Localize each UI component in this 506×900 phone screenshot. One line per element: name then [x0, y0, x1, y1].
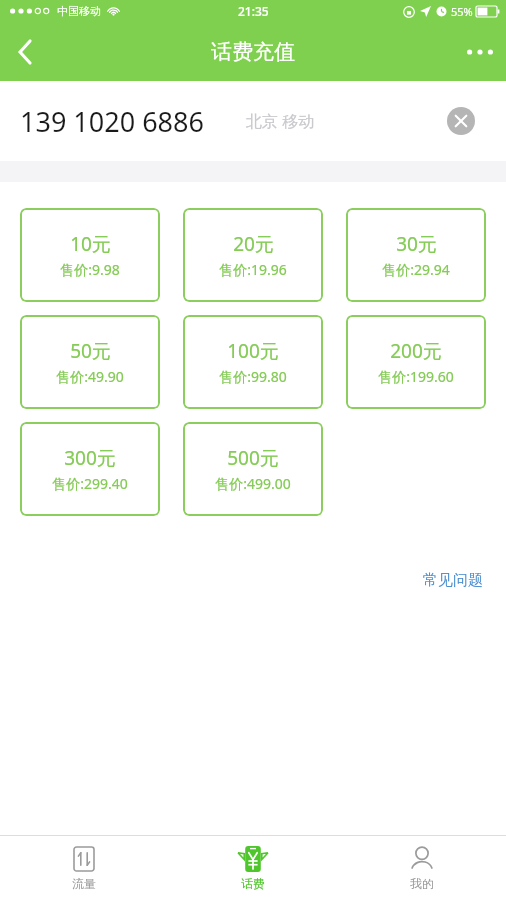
button[interactable]: 200元: [346, 315, 486, 409]
staticText: 我的: [410, 876, 434, 891]
staticText: 话费充值: [211, 39, 295, 65]
staticText: 售价:9.98: [60, 260, 120, 279]
button[interactable]: 我的: [337, 836, 506, 900]
button[interactable]: 50元: [20, 315, 160, 409]
button[interactable]: 300元: [20, 422, 160, 516]
staticText: 流量: [72, 876, 96, 891]
staticText: 20元: [233, 231, 274, 257]
button[interactable]: Clear: [441, 101, 481, 141]
button[interactable]: 30元: [346, 208, 486, 302]
button[interactable]: 10元: [20, 208, 160, 302]
button[interactable]: 500元: [183, 422, 323, 516]
button[interactable]: More options: [454, 26, 506, 78]
staticText: 售价:29.94: [382, 260, 450, 279]
staticText: 售价:49.90: [56, 367, 124, 386]
staticText: 售价:499.00: [215, 474, 291, 493]
staticText: 售价:19.96: [219, 260, 287, 279]
staticText: 100元: [227, 338, 279, 364]
staticText: 北京 移动: [246, 110, 315, 132]
staticText: 21:35: [238, 3, 269, 19]
staticText: 30元: [396, 231, 437, 257]
button[interactable]: Back: [0, 27, 50, 77]
staticText: 话费: [241, 876, 265, 891]
staticText: 10元: [70, 231, 111, 257]
staticText: 200元: [390, 338, 442, 364]
button[interactable]: 100元: [183, 315, 323, 409]
staticText: 售价:199.60: [378, 367, 454, 386]
staticText: 300元: [64, 445, 116, 471]
button[interactable]: 20元: [183, 208, 323, 302]
staticText: 55%: [451, 4, 473, 19]
staticText: 售价:99.80: [219, 367, 287, 386]
staticText: 售价:299.40: [52, 474, 128, 493]
staticText: 139 1020 6886: [20, 103, 204, 140]
button[interactable]: 话费: [168, 836, 337, 900]
staticText: 50元: [70, 338, 111, 364]
button[interactable]: 常见问题: [400, 567, 506, 594]
staticText: 中国移动: [57, 4, 101, 18]
staticText: 500元: [227, 445, 279, 471]
staticText: 常见问题: [423, 571, 483, 590]
button[interactable]: 流量: [0, 836, 168, 900]
